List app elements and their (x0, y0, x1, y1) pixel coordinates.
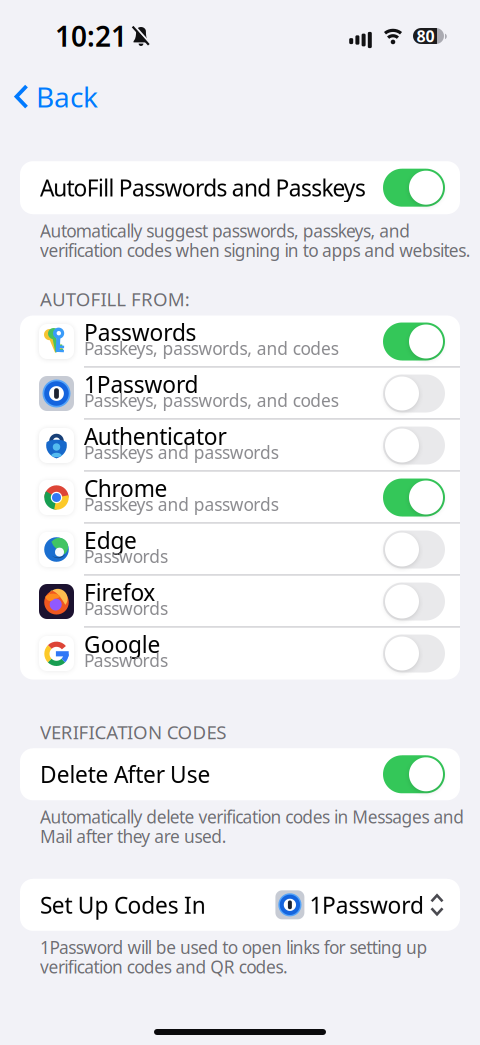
button[interactable]: 1Password (20, 367, 460, 419)
staticText: Back (36, 78, 98, 115)
button[interactable]: Set Up Codes In (20, 879, 460, 931)
button[interactable]: Google (20, 627, 460, 679)
button[interactable]: Authenticator (20, 419, 460, 471)
button[interactable]: Passwords (20, 315, 460, 367)
staticText: Passwords (84, 545, 168, 568)
staticText: Authenticator (84, 421, 226, 451)
staticText: verification codes and QR codes. (40, 955, 288, 978)
staticText: Automatically suggest passwords, passkey… (40, 219, 410, 242)
staticText: Passwords (84, 597, 168, 620)
staticText: VERIFICATION CODES (40, 719, 226, 744)
button[interactable]: Back (0, 78, 98, 115)
staticText: Passkeys and passwords (84, 493, 279, 516)
staticText: AutoFill Passwords and Passkeys (40, 173, 366, 203)
staticText: AUTOFILL FROM: (40, 287, 190, 311)
button[interactable]: Chrome (20, 471, 460, 523)
staticText: 1Password (84, 369, 199, 399)
button[interactable]: AutoFill Passwords and Passkeys (20, 161, 460, 214)
staticText: Passkeys and passwords (84, 441, 279, 464)
staticText: Automatically delete verification codes … (40, 805, 464, 828)
staticText: Edge (84, 525, 137, 555)
staticText: 10:21 (55, 17, 127, 55)
staticText: Google (84, 629, 160, 659)
staticText: Passkeys, passwords, and codes (84, 337, 339, 360)
staticText: Chrome (84, 473, 167, 503)
button[interactable]: Delete After Use (20, 748, 460, 800)
button[interactable]: Firefox (20, 575, 460, 627)
staticText: Firefox (84, 577, 155, 607)
staticText: Passwords (84, 317, 197, 347)
staticText: 80 (416, 25, 434, 47)
staticText: Set Up Codes In (40, 890, 206, 920)
button[interactable]: Edge (20, 523, 460, 575)
staticText: 1Password will be used to open links for… (40, 936, 427, 959)
staticText: verification codes when signing in to ap… (40, 239, 471, 262)
staticText: Delete After Use (40, 759, 210, 789)
staticText: 1Password (309, 890, 424, 920)
staticText: Passkeys, passwords, and codes (84, 389, 339, 412)
staticText: Mail after they are used. (40, 825, 227, 848)
staticText: Passwords (84, 649, 168, 672)
